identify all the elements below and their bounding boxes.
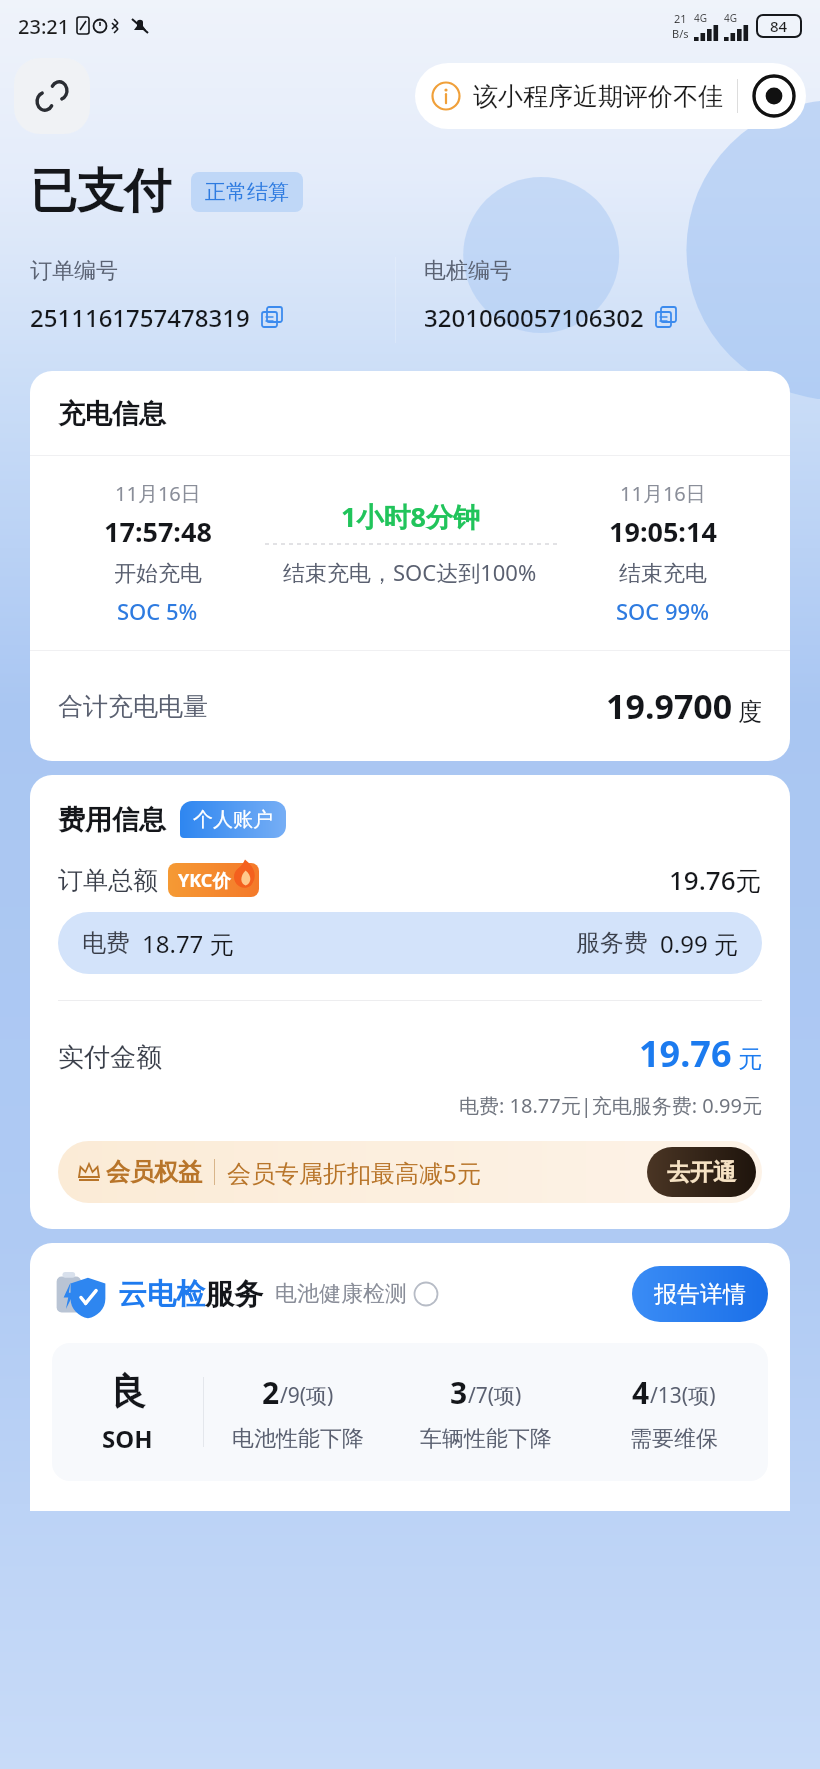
staticText: 服务 — [205, 1276, 263, 1313]
staticText: B/s — [672, 26, 689, 41]
staticText: SOC 5% — [117, 596, 198, 626]
staticText: 结束充电，SOC达到100% — [283, 557, 537, 587]
staticText: 云电检 — [118, 1276, 205, 1313]
staticText: 2511161757478319 — [30, 301, 250, 334]
button[interactable]: 会员权益 — [58, 1141, 762, 1203]
staticText: 去开通 — [667, 1158, 736, 1187]
staticText: /7(项) — [468, 1381, 522, 1410]
staticText: 19.76元 — [669, 862, 762, 898]
staticText: 1小时8分钟 — [341, 498, 480, 535]
staticText: 合计充电电量 — [58, 691, 208, 722]
staticText: 19.9700 — [606, 683, 733, 729]
staticText: 0.99 元 — [660, 927, 738, 960]
button[interactable]: 去开通 — [647, 1147, 756, 1197]
staticText: /13(项) — [650, 1381, 716, 1410]
button[interactable]: Copy — [258, 303, 288, 333]
staticText: 电池健康检测 — [275, 1280, 407, 1308]
staticText: 4G — [724, 11, 737, 25]
staticText: 实付金额 — [58, 1041, 162, 1074]
button[interactable]: Copy — [652, 303, 682, 333]
staticText: 开始充电 — [114, 560, 202, 588]
staticText: 已支付 — [30, 162, 171, 221]
staticText: YKC价 — [178, 868, 231, 893]
staticText: 电费 — [82, 928, 130, 958]
staticText: 11月16日 — [115, 480, 201, 507]
staticText: 个人账户 — [193, 807, 273, 832]
staticText: 2 — [262, 1372, 280, 1413]
staticText: 11月16日 — [620, 480, 706, 507]
staticText: 会员权益 — [106, 1157, 202, 1187]
staticText: SOH — [102, 1422, 153, 1455]
staticText: 19.76 — [639, 1029, 732, 1078]
staticText: 服务费 — [576, 928, 648, 958]
staticText: SOC 99% — [616, 596, 709, 626]
staticText: 需要维保 — [630, 1425, 718, 1453]
staticText: 元 — [738, 1044, 762, 1074]
staticText: 费用信息 — [58, 803, 166, 837]
staticText: 4 — [632, 1372, 650, 1413]
staticText: 电桩编号 — [424, 257, 512, 285]
staticText: 结束充电 — [619, 560, 707, 588]
staticText: 订单编号 — [30, 257, 118, 285]
staticText: 车辆性能下降 — [420, 1425, 552, 1453]
staticText: 84 — [770, 16, 788, 36]
button[interactable]: 该小程序近期评价不佳 — [431, 63, 796, 129]
staticText: 报告详情 — [654, 1280, 746, 1309]
staticText: 4G — [694, 11, 707, 25]
staticText: 电费: 18.77元|充电服务费: 0.99元 — [459, 1092, 762, 1119]
staticText: 21 — [674, 11, 687, 26]
staticText: 3 — [450, 1372, 468, 1413]
staticText: 正常结算 — [205, 179, 289, 205]
staticText: 23:21 — [18, 13, 70, 40]
staticText: 订单总额 — [58, 865, 158, 896]
staticText: 电池性能下降 — [232, 1425, 364, 1453]
staticText: 3201060057106302 — [424, 301, 644, 334]
staticText: 良 — [110, 1369, 146, 1414]
button[interactable]: More — [752, 74, 796, 118]
staticText: 17:57:48 — [104, 513, 212, 550]
staticText: 19:05:14 — [609, 513, 717, 550]
staticText: 18.77 元 — [142, 927, 234, 960]
button[interactable]: Link — [14, 58, 90, 134]
staticText: 度 — [738, 697, 762, 727]
staticText: 会员专属折扣最高减5元 — [227, 1156, 481, 1189]
staticText: 充电信息 — [58, 397, 166, 431]
other: Help — [413, 1281, 439, 1307]
staticText: /9(项) — [280, 1381, 334, 1410]
button[interactable]: 报告详情 — [632, 1266, 768, 1322]
staticText: 该小程序近期评价不佳 — [473, 81, 723, 112]
